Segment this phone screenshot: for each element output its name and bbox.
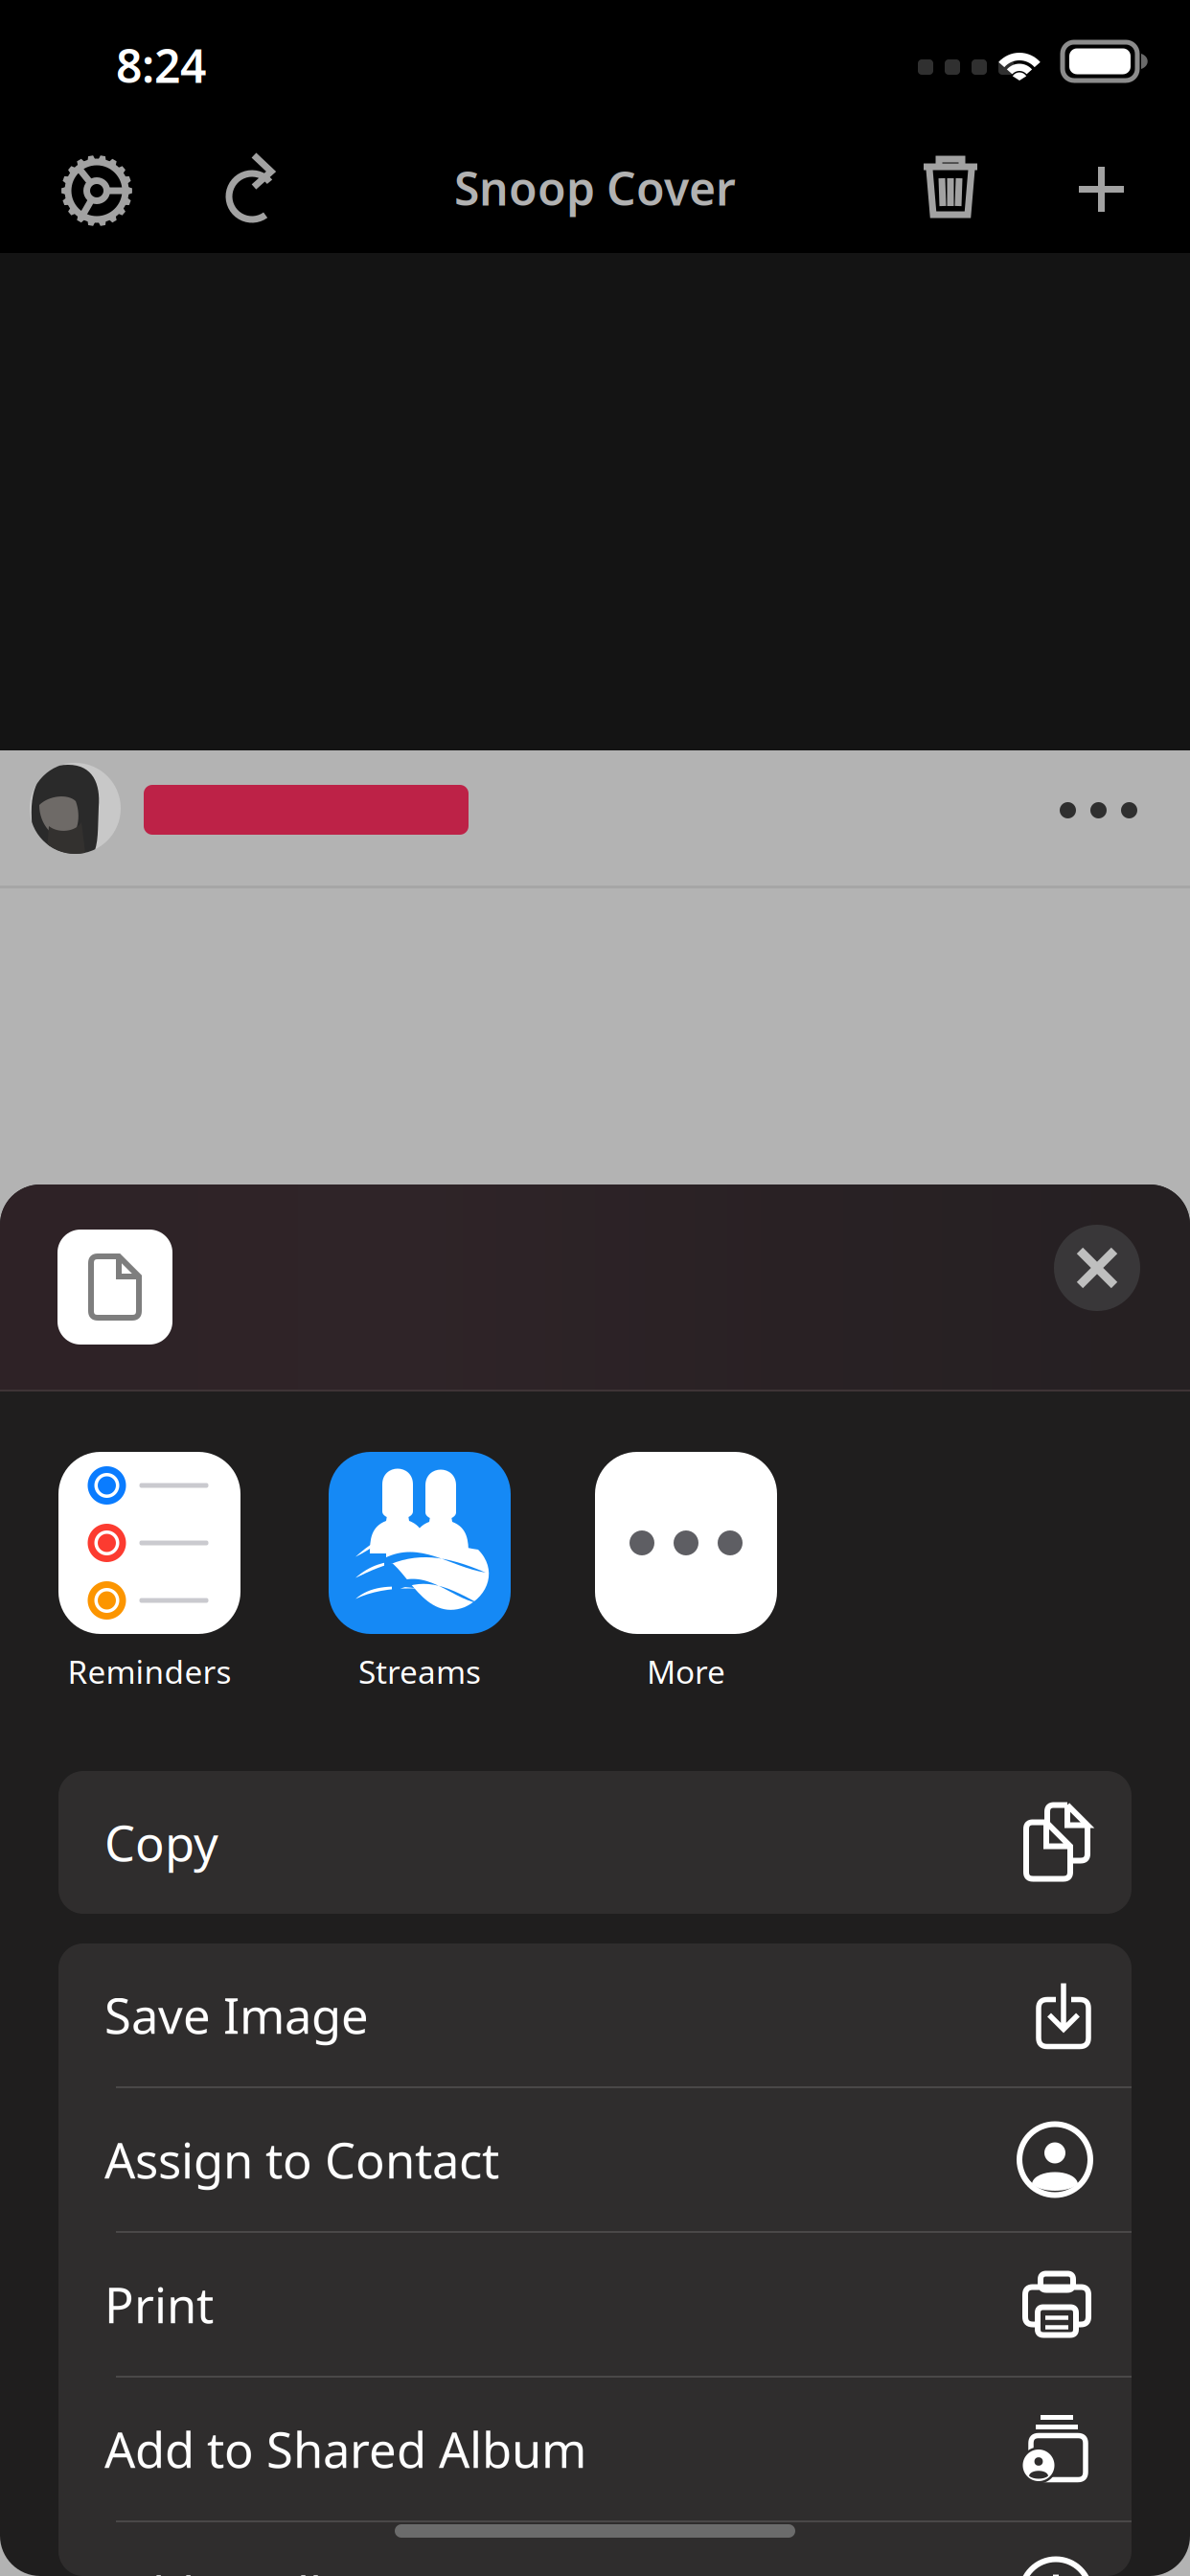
button[interactable]: Streams <box>299 1452 540 1699</box>
staticText: 8:24 <box>116 35 206 96</box>
staticText: Streams <box>358 1650 481 1693</box>
button[interactable]: Add to Shared Album <box>58 2378 1132 2520</box>
staticText: Reminders <box>68 1650 231 1693</box>
staticText: Add to Shared Album <box>104 2417 586 2481</box>
staticText: Copy <box>104 1810 218 1875</box>
button[interactable]: Save Image <box>58 1943 1132 2086</box>
button[interactable]: Rotate <box>225 152 281 219</box>
button[interactable]: Add <box>1076 164 1127 215</box>
button[interactable]: Copy <box>58 1771 1132 1914</box>
button[interactable]: Shared item preview <box>57 1230 172 1345</box>
button[interactable]: Add to Album <box>58 2522 1132 2576</box>
staticText: Add to Album <box>104 2562 414 2576</box>
staticText: Save Image <box>104 1983 369 2047</box>
staticText: Assign to Contact <box>104 2127 499 2192</box>
button[interactable]: Print <box>58 2233 1132 2376</box>
button[interactable]: Reminders <box>29 1452 270 1699</box>
button[interactable]: Close <box>1054 1225 1140 1311</box>
button[interactable]: Adjust <box>61 155 132 226</box>
button[interactable]: More <box>565 1452 807 1699</box>
button[interactable]: Delete <box>921 151 980 221</box>
button[interactable]: Assign to Contact <box>58 2088 1132 2231</box>
staticText: Snoop Cover <box>454 157 736 218</box>
staticText: More <box>647 1650 725 1693</box>
staticText: Print <box>104 2272 214 2337</box>
